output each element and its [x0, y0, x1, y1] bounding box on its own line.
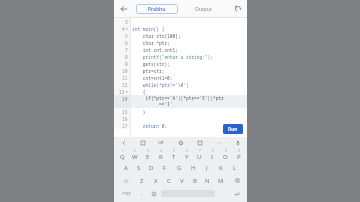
staticText: if(*ptr=='A'||*ptr=='E'||*ptr	[132, 95, 224, 101]
button[interactable]: 4	[154, 148, 167, 161]
staticText: ptr=str;	[132, 68, 165, 74]
staticText: 12	[122, 82, 128, 88]
button[interactable]: 0	[232, 148, 245, 161]
button[interactable]: .	[216, 189, 228, 198]
button[interactable]: Undo	[231, 2, 244, 15]
button[interactable]: Settings	[175, 137, 186, 148]
staticText: 7	[125, 47, 128, 53]
button[interactable]: L	[228, 161, 242, 174]
button[interactable]: 9	[219, 148, 232, 161]
button[interactable]: Run	[223, 124, 243, 134]
button[interactable]: B	[188, 174, 201, 187]
staticText: int main() {	[132, 26, 165, 32]
staticText: 0	[238, 149, 240, 153]
button[interactable]: ,	[136, 189, 148, 198]
button[interactable]: Backspace	[227, 174, 245, 187]
staticText: K	[219, 164, 223, 172]
button[interactable]: Clipboard	[137, 137, 148, 148]
button[interactable]: V	[175, 174, 188, 187]
button[interactable]: 3	[141, 148, 154, 161]
staticText: Y	[185, 153, 189, 161]
button[interactable]: GIF	[156, 137, 167, 148]
staticText: Output	[195, 6, 212, 13]
button[interactable]: 2	[128, 148, 141, 161]
staticText: B	[193, 177, 197, 185]
staticText: J	[206, 164, 208, 172]
staticText: 3	[125, 19, 128, 25]
button[interactable]: H	[186, 161, 200, 174]
button[interactable]: F	[158, 161, 172, 174]
staticText: 10	[122, 68, 128, 74]
button[interactable]: ?123	[116, 189, 136, 198]
staticText: 15	[122, 109, 128, 115]
button[interactable]: 6	[180, 148, 193, 161]
staticText: D	[149, 164, 154, 172]
staticText: L	[233, 164, 237, 172]
button[interactable]: D	[145, 161, 158, 174]
button[interactable]: Shift	[116, 174, 135, 187]
staticText: char *ptr;	[132, 40, 170, 46]
button[interactable]: M	[214, 174, 227, 187]
button[interactable]: 5	[167, 148, 180, 161]
staticText: gets(str);	[132, 61, 170, 67]
staticText: M	[218, 177, 224, 185]
staticText: 2	[134, 149, 136, 153]
staticText: ?123	[122, 191, 131, 196]
staticText: A	[124, 164, 128, 172]
button[interactable]: C	[162, 174, 175, 187]
staticText: 8	[212, 149, 214, 153]
button[interactable]: Emoji	[148, 189, 160, 198]
staticText: 4	[160, 149, 162, 153]
button[interactable]: X	[149, 174, 162, 187]
staticText: 14	[122, 96, 128, 102]
staticText: ▾	[126, 27, 128, 31]
button[interactable]: J	[200, 161, 214, 174]
button[interactable]: Prabhu	[136, 4, 178, 14]
staticText: GIF	[158, 140, 165, 145]
staticText: 13	[119, 89, 125, 95]
staticText: O	[223, 153, 228, 161]
button[interactable]: Enter	[228, 189, 245, 198]
button[interactable]: A	[119, 161, 132, 174]
staticText: 6	[186, 149, 188, 153]
button[interactable]: Back	[117, 2, 130, 15]
button[interactable]: 1	[116, 148, 128, 161]
button[interactable]: Output	[182, 4, 225, 14]
button[interactable]: 8	[206, 148, 219, 161]
staticText: {	[132, 89, 146, 95]
button[interactable]: 7	[193, 148, 206, 161]
staticText: =='I'	[132, 101, 173, 107]
staticText: char str[100];	[132, 33, 181, 39]
staticText: 5	[173, 149, 175, 153]
staticText: H	[191, 164, 196, 172]
staticText: G	[177, 164, 182, 172]
staticText: 5	[125, 33, 128, 39]
staticText: Z	[140, 177, 144, 185]
button[interactable]: N	[201, 174, 214, 187]
staticText: 1	[122, 149, 124, 153]
staticText: 11	[122, 75, 128, 81]
button[interactable]: 14	[114, 95, 247, 108]
staticText: C	[167, 177, 171, 185]
button[interactable]: Previous	[118, 137, 129, 148]
button[interactable]: S	[132, 161, 145, 174]
staticText: T	[172, 153, 176, 161]
staticText: int cnt,cnt1;	[132, 47, 178, 53]
staticText: printf("enter a string:");	[132, 54, 213, 60]
staticText: cnt=cnt1=0;	[132, 75, 173, 81]
staticText: R	[159, 153, 163, 161]
button[interactable]: More options	[213, 137, 224, 148]
staticText: X	[154, 177, 158, 185]
button[interactable]: Z	[135, 174, 149, 187]
button[interactable]: Voice input	[232, 137, 243, 148]
staticText: 8	[125, 54, 128, 60]
staticText: N	[205, 177, 210, 185]
staticText: W	[132, 153, 138, 161]
staticText: ,	[141, 190, 143, 197]
staticText: 9	[225, 149, 227, 153]
button[interactable]: G	[172, 161, 186, 174]
button[interactable]: K	[214, 161, 228, 174]
button[interactable]: Translate	[194, 137, 205, 148]
staticText: 9	[125, 61, 128, 67]
